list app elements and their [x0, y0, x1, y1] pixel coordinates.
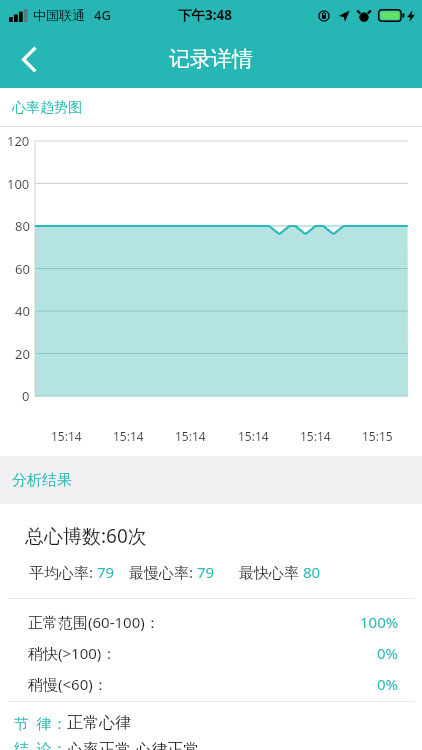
- staticText: 结 论：: [14, 738, 67, 750]
- staticText: 正常心律: [67, 713, 131, 733]
- staticText: 20: [15, 345, 30, 363]
- staticText: 15:15: [362, 428, 393, 444]
- staticText: 0: [22, 387, 30, 405]
- button[interactable]: Back: [0, 30, 58, 88]
- staticText: 100%: [360, 612, 399, 632]
- staticText: 15:14: [51, 428, 82, 444]
- staticText: 60: [15, 260, 30, 278]
- staticText: 平均心率:: [29, 562, 97, 582]
- staticText: 记录详情: [169, 46, 253, 72]
- staticText: 15:14: [238, 428, 269, 444]
- staticText: 100: [7, 175, 30, 193]
- staticText: 正常范围(60-100)：: [28, 612, 160, 632]
- staticText: 15:14: [300, 428, 331, 444]
- staticText: 15:14: [175, 428, 206, 444]
- staticText: 稍慢(<60)：: [28, 674, 108, 694]
- staticText: 心率趋势图: [12, 99, 82, 117]
- staticText: 节 律：: [14, 713, 67, 733]
- staticText: 中国联通: [33, 7, 85, 23]
- staticText: 下午3:48: [178, 6, 232, 24]
- staticText: 80: [303, 562, 321, 582]
- staticText: 稍快(>100)：: [28, 643, 117, 663]
- staticText: 总心博数:60次: [25, 523, 147, 549]
- staticText: 15:14: [113, 428, 144, 444]
- button[interactable]: 稍慢(<60)：: [0, 668, 422, 699]
- button[interactable]: 稍快(>100)：: [0, 637, 422, 668]
- staticText: 40: [15, 302, 30, 320]
- staticText: 最快心率: [239, 562, 303, 582]
- staticText: 80: [15, 217, 30, 235]
- staticText: 分析结果: [12, 471, 72, 490]
- staticText: 4G: [94, 6, 111, 24]
- staticText: 79: [97, 562, 115, 582]
- staticText: 0%: [377, 643, 399, 663]
- button[interactable]: 正常范围(60-100)：: [0, 606, 422, 637]
- staticText: 120: [7, 132, 30, 150]
- staticText: 心率正常,心律正常。: [67, 738, 216, 750]
- staticText: 0%: [377, 674, 399, 694]
- staticText: 79: [197, 562, 215, 582]
- staticText: 最慢心率:: [129, 562, 197, 582]
